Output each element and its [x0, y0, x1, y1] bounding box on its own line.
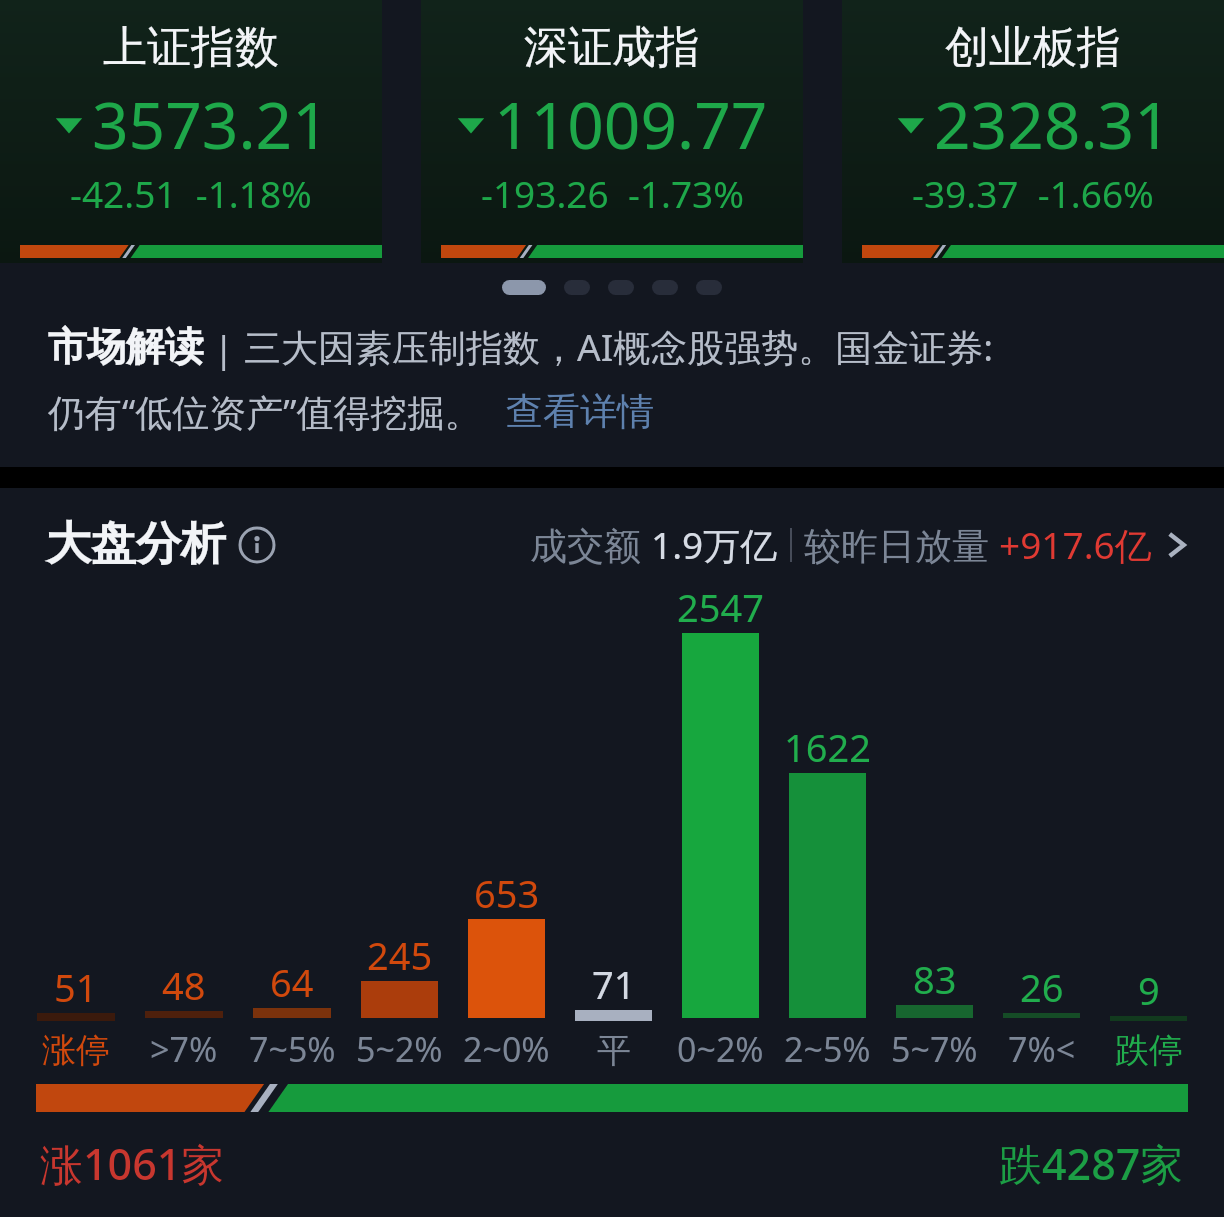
staticText: 245 [367, 929, 433, 981]
staticText: -39.37 -1.66% [912, 168, 1154, 218]
staticText: 0~2% [677, 1026, 764, 1072]
button[interactable]: 创业板指 [842, 0, 1224, 263]
button[interactable]: 上证指数 [0, 0, 382, 263]
staticText: 3573.21 [92, 81, 329, 168]
staticText: 跌停 [1115, 1029, 1183, 1072]
staticText: 上证指数 [103, 20, 279, 75]
staticText: -42.51 -1.18% [70, 168, 312, 218]
button[interactable]: 9 [1095, 581, 1202, 1084]
staticText: 26 [1020, 961, 1064, 1013]
button[interactable]: 83 [881, 581, 988, 1084]
button[interactable]: 查看详情 [506, 388, 654, 435]
button[interactable]: 1622 [774, 581, 881, 1084]
staticText: 9 [1138, 964, 1160, 1016]
staticText: 仍有“低位资产”值得挖掘。 [48, 386, 482, 437]
staticText: 51 [54, 961, 98, 1013]
button[interactable]: 653 [453, 581, 560, 1084]
staticText: 83 [913, 953, 957, 1005]
button[interactable]: 64 [238, 581, 346, 1084]
staticText: 成交额 [530, 519, 651, 570]
staticText: 深证成指 [524, 20, 700, 75]
staticText: >7% [150, 1026, 218, 1072]
staticText: 查看详情 [506, 388, 654, 435]
staticText: 5~2% [356, 1026, 443, 1072]
staticText: 2~5% [784, 1026, 871, 1072]
staticText: 三大因素压制指数，AI概念股强势。国金证券: [244, 321, 994, 372]
staticText: -193.26 -1.73% [481, 168, 744, 218]
staticText: 大盘分析 [46, 516, 226, 573]
staticText: 跌4287家 [999, 1134, 1184, 1193]
button[interactable]: 深证成指 [421, 0, 803, 263]
staticText: 涨1061家 [40, 1134, 225, 1193]
staticText: 2547 [677, 581, 764, 633]
button[interactable]: 71 [560, 581, 667, 1084]
button[interactable]: 大盘分析 [0, 516, 1224, 573]
staticText: 创业板指 [945, 20, 1121, 75]
button[interactable]: 26 [988, 581, 1095, 1084]
staticText: 7~5% [249, 1026, 336, 1072]
staticText: 涨停 [42, 1029, 110, 1072]
staticText: 平 [597, 1029, 631, 1072]
staticText: 1622 [784, 721, 871, 773]
staticText: 2328.31 [934, 81, 1171, 168]
staticText: 7%< [1008, 1026, 1076, 1072]
staticText: 市场解读 [48, 322, 204, 371]
button[interactable]: More [1164, 524, 1190, 566]
staticText: 较昨日放量 [804, 519, 999, 570]
button[interactable]: 245 [346, 581, 453, 1084]
staticText: 653 [474, 867, 540, 919]
staticText: | [204, 322, 244, 372]
staticText: 2~0% [463, 1026, 550, 1072]
button[interactable]: 48 [130, 581, 238, 1084]
button[interactable]: 2547 [667, 581, 774, 1084]
staticText: 64 [270, 956, 314, 1008]
staticText: +917.6亿 [999, 519, 1152, 570]
staticText: 5~7% [891, 1026, 978, 1072]
button[interactable]: 51 [22, 581, 130, 1084]
staticText: 11009.77 [494, 81, 768, 168]
staticText: 48 [162, 959, 206, 1011]
staticText: 71 [592, 958, 636, 1010]
staticText: 1.9万亿 [651, 519, 778, 570]
button[interactable]: Info [238, 526, 276, 564]
button[interactable]: 市场解读 [0, 311, 1224, 437]
